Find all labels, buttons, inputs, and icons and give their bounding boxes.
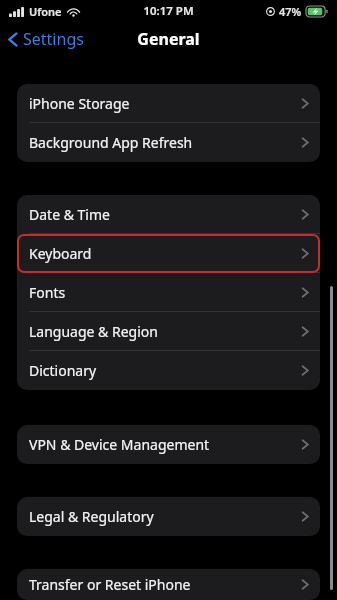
staticText: 10:17 PM: [143, 3, 194, 19]
button[interactable]: Date & Time: [17, 195, 320, 234]
other: Open: [301, 97, 309, 110]
button[interactable]: Background App Refresh: [17, 123, 320, 162]
other: Open: [301, 286, 309, 299]
button[interactable]: Dictionary: [17, 351, 320, 390]
staticText: Dictionary: [29, 361, 97, 380]
other: Open: [301, 136, 309, 149]
button[interactable]: Transfer or Reset iPhone: [17, 569, 320, 600]
button[interactable]: iPhone Storage: [17, 84, 320, 123]
other: Open: [301, 364, 309, 377]
staticText: Background App Refresh: [29, 133, 193, 152]
button[interactable]: VPN & Device Management: [17, 425, 320, 464]
staticText: Fonts: [29, 283, 66, 302]
staticText: VPN & Device Management: [29, 435, 210, 454]
button[interactable]: Fonts: [17, 273, 320, 312]
button[interactable]: Language & Region: [17, 312, 320, 351]
button[interactable]: Settings: [0, 23, 94, 55]
other: Open: [301, 438, 309, 451]
staticText: Date & Time: [29, 205, 110, 224]
staticText: General: [137, 28, 200, 50]
other: Open: [301, 208, 309, 221]
staticText: 47%: [279, 4, 302, 19]
staticText: Legal & Regulatory: [29, 507, 154, 526]
staticText: iPhone Storage: [29, 94, 130, 113]
staticText: Transfer or Reset iPhone: [29, 575, 191, 594]
button[interactable]: Legal & Regulatory: [17, 497, 320, 536]
other: Open: [301, 510, 309, 523]
staticText: Language & Region: [29, 322, 158, 341]
other: Open: [301, 578, 309, 591]
staticText: Ufone: [29, 4, 62, 19]
staticText: Keyboard: [29, 244, 92, 263]
button[interactable]: Keyboard: [17, 234, 320, 273]
other: Open: [301, 325, 309, 338]
staticText: Settings: [23, 28, 84, 50]
other: Open: [301, 247, 309, 260]
